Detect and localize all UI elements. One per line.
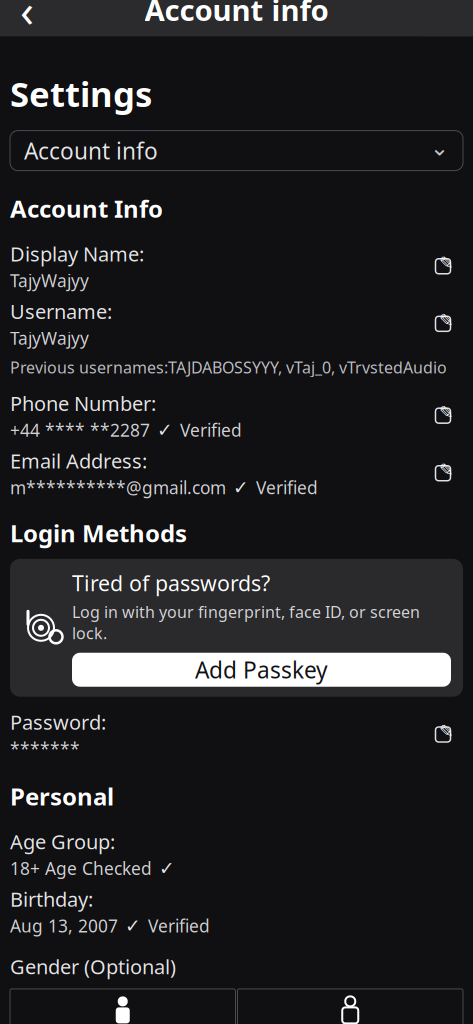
staticText: Previous usernames:TAJDABOSSYYY, vTaj_0,…	[10, 357, 447, 378]
staticText: Verified	[180, 418, 242, 441]
staticText: ⌄	[430, 135, 449, 160]
staticText: Tired of passwords?	[72, 569, 270, 597]
staticText: Account info	[24, 135, 158, 166]
staticText: Aug 13, 2007	[10, 914, 118, 937]
staticText: *******	[10, 737, 80, 760]
button[interactable]: Edit Display Name:	[423, 246, 463, 286]
staticText: Age Group:	[10, 828, 115, 855]
staticText: Display Name:	[10, 240, 144, 267]
staticText: Account info	[144, 0, 328, 29]
staticText: ✓	[157, 419, 173, 440]
button[interactable]: Male	[10, 989, 235, 1024]
staticText: ✎	[439, 310, 454, 330]
staticText: Log in with your fingerprint, face ID, o…	[72, 601, 420, 644]
staticText: ✎	[439, 402, 454, 422]
button[interactable]: Add Passkey	[72, 653, 451, 687]
staticText: TajyWajyy	[10, 269, 89, 292]
staticText: Gender (Optional)	[10, 953, 176, 980]
staticText: ✓	[233, 477, 249, 498]
button[interactable]: Edit Email Address:	[423, 453, 463, 493]
staticText: ✓	[159, 858, 175, 879]
staticText: ✎	[439, 460, 454, 480]
staticText: Email Address:	[10, 447, 147, 474]
staticText: Birthday:	[10, 886, 93, 912]
staticText: Username:	[10, 298, 112, 325]
staticText: +44 **** **2287	[10, 418, 150, 441]
staticText: Account Info	[10, 193, 163, 224]
staticText: Password:	[10, 709, 106, 735]
button[interactable]: Account info	[10, 131, 463, 171]
button[interactable]: Edit Username:	[423, 304, 463, 344]
staticText: ✎	[439, 721, 454, 741]
staticText: 18+ Age Checked	[10, 857, 152, 880]
staticText: Settings	[10, 71, 152, 117]
button[interactable]: Back	[0, 0, 54, 37]
staticText: Personal	[10, 780, 114, 812]
staticText: Phone Number:	[10, 390, 156, 416]
staticText: Verified	[148, 914, 210, 937]
staticText: ✓	[125, 915, 141, 936]
staticText: TajyWajyy	[10, 327, 89, 350]
staticText: Verified	[256, 476, 318, 499]
staticText: Login Methods	[10, 517, 187, 549]
button[interactable]: Edit Phone Number:	[423, 396, 463, 436]
button[interactable]: Edit Password:	[423, 714, 463, 754]
staticText: Add Passkey	[195, 655, 328, 685]
staticText: m**********@gmail.com	[10, 476, 226, 499]
staticText: ‹	[20, 0, 34, 40]
staticText: ✎	[439, 253, 454, 273]
button[interactable]: Female	[237, 989, 463, 1024]
